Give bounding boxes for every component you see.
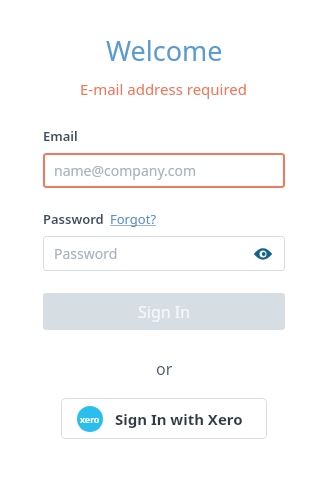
staticText: Password: [43, 210, 104, 228]
staticText: Sign In with Xero: [115, 409, 243, 429]
staticText: Sign In: [138, 301, 191, 323]
button[interactable]: Password: [43, 236, 285, 271]
staticText: E-mail address required: [80, 79, 248, 99]
staticText: Forgot?: [110, 210, 157, 228]
button[interactable]: Show password: [252, 243, 274, 265]
staticText: Welcome: [106, 32, 223, 69]
button[interactable]: Sign In: [43, 293, 285, 330]
staticText: Password: [54, 244, 118, 263]
button[interactable]: xero: [61, 398, 267, 439]
staticText: name@company.com: [54, 161, 197, 180]
button[interactable]: name@company.com: [43, 153, 285, 188]
staticText: xero: [80, 413, 100, 425]
button[interactable]: Forgot?: [110, 210, 157, 228]
staticText: Email: [43, 127, 78, 145]
staticText: or: [156, 358, 173, 380]
